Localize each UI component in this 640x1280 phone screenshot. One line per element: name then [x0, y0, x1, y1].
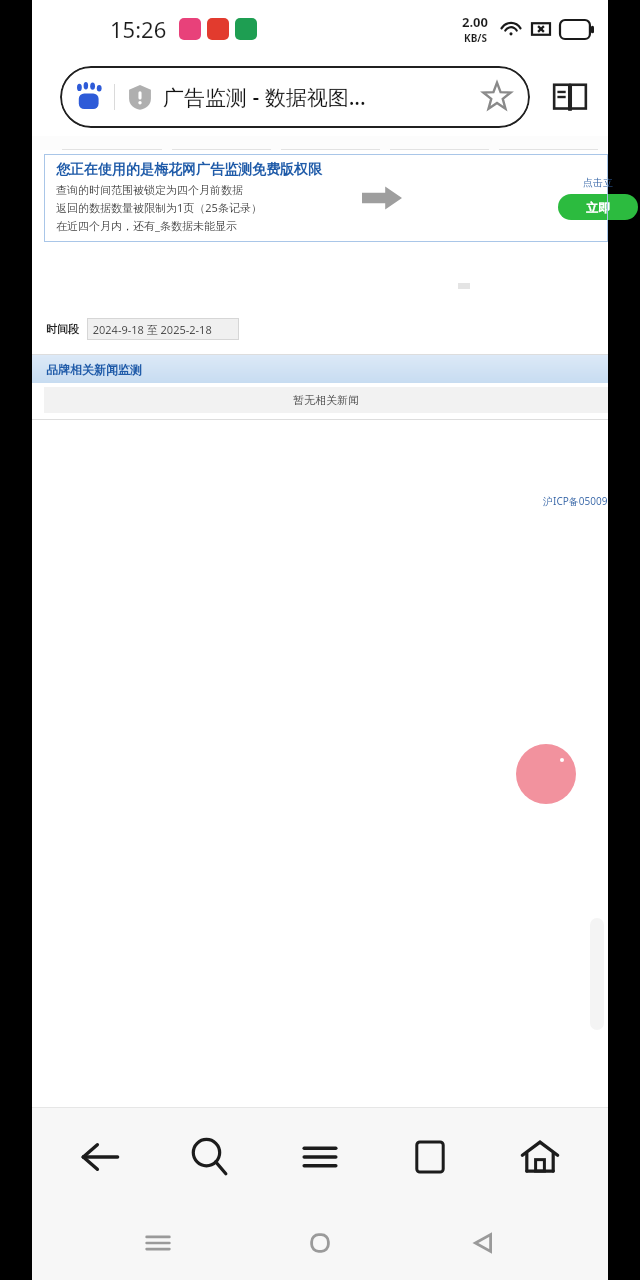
- staticText: 在近四个月内，还有_条数据未能显示: [56, 218, 237, 233]
- button[interactable]: 广告监测 - 数据视图...: [60, 66, 530, 128]
- staticText: 品牌相关新闻监测: [46, 362, 142, 377]
- button[interactable]: Search: [168, 1115, 252, 1199]
- button[interactable]: Home: [498, 1115, 582, 1199]
- staticText: 时间段: [46, 322, 79, 336]
- staticText: 暂无相关新闻: [293, 393, 359, 407]
- button[interactable]: Back: [446, 1206, 520, 1280]
- staticText: 广告监测 - 数据视图...: [163, 83, 366, 112]
- staticText: KB/S: [464, 31, 487, 45]
- button[interactable]: Tabs, 12 open: [388, 1115, 472, 1199]
- staticText: 您正在使用的是梅花网广告监测免费版权限: [56, 161, 322, 179]
- staticText: 2024-9-18 至 2025-2-18: [87, 322, 212, 337]
- button[interactable]: 2024-9-18 至 2025-2-18: [87, 318, 239, 340]
- button[interactable]: Reading mode: [544, 71, 596, 123]
- staticText: 查询的时间范围被锁定为四个月前数据: [56, 183, 243, 197]
- staticText: 返回的数据数量被限制为1页（25条记录）: [56, 200, 262, 215]
- button[interactable]: Floating assistant: [516, 744, 576, 804]
- staticText: 15:26: [110, 14, 167, 44]
- button[interactable]: Home: [283, 1206, 357, 1280]
- button[interactable]: 立即: [558, 194, 638, 220]
- staticText: 立即: [586, 200, 610, 215]
- button[interactable]: 沪ICP备05009: [543, 494, 608, 508]
- button[interactable]: Menu: [278, 1115, 362, 1199]
- button[interactable]: Bookmark: [478, 78, 516, 116]
- staticText: 2.00: [462, 13, 488, 31]
- button[interactable]: Back: [58, 1115, 142, 1199]
- staticText: 点击立: [583, 176, 613, 189]
- button[interactable]: Recents: [121, 1206, 195, 1280]
